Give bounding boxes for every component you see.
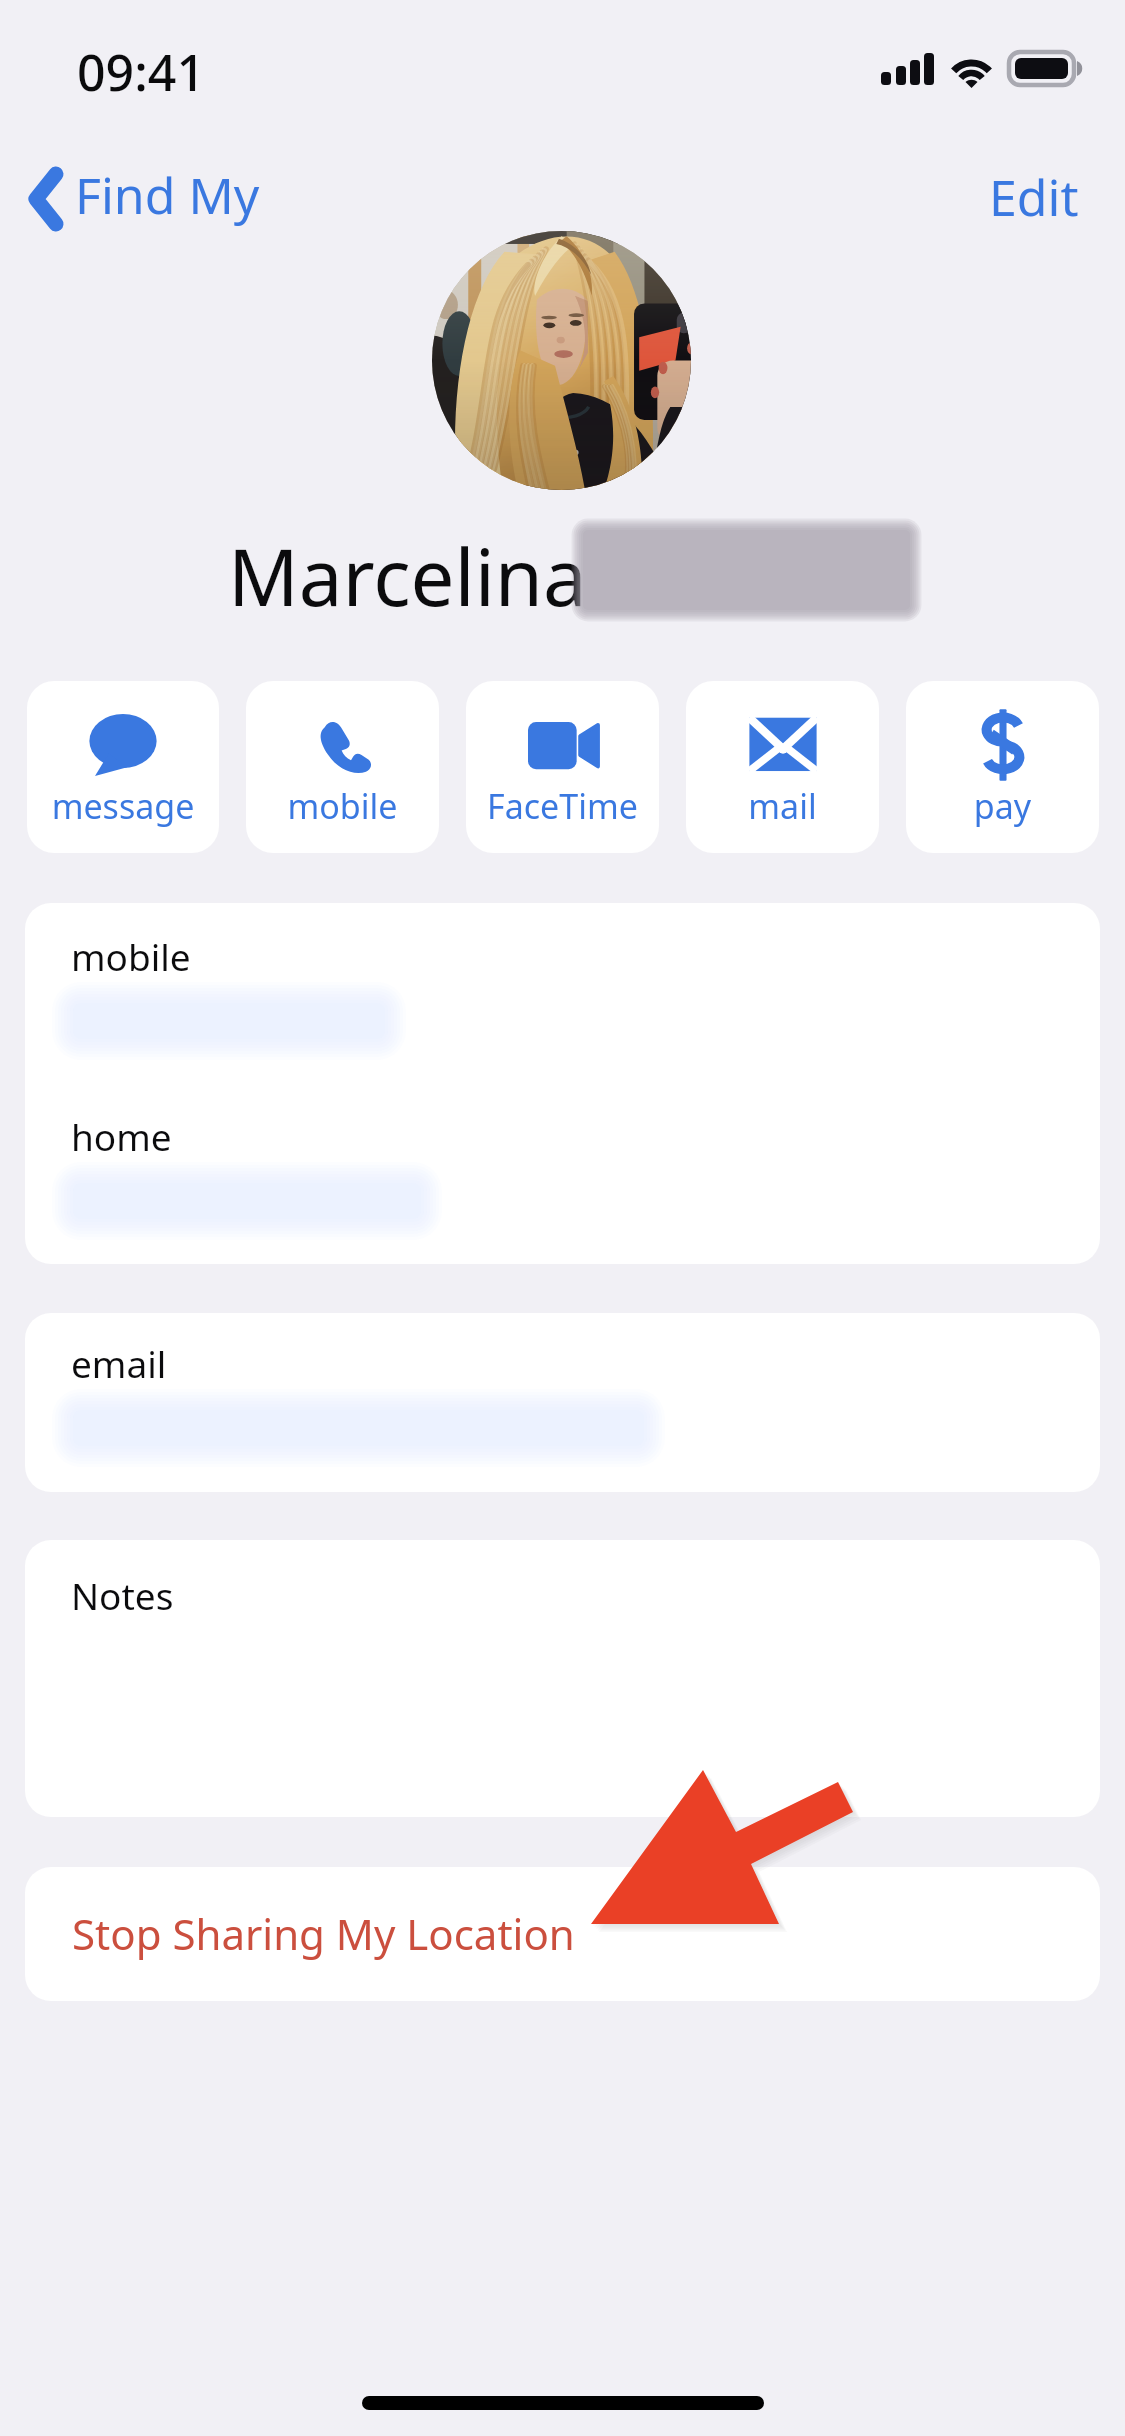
- button[interactable]: Edit: [949, 152, 1125, 238]
- staticText: pay: [906, 783, 1099, 829]
- staticText: home: [71, 1111, 172, 1161]
- button[interactable]: FaceTime: [466, 681, 659, 853]
- button[interactable]: mobile: [25, 903, 1100, 1083]
- button[interactable]: email: [25, 1313, 1100, 1492]
- button[interactable]: home: [25, 1083, 1100, 1264]
- staticText: Marcelina: [228, 523, 587, 629]
- button[interactable]: Contact photo of Marcelina: [432, 231, 691, 490]
- button[interactable]: Back to Find My: [0, 156, 280, 242]
- staticText: FaceTime: [466, 783, 659, 829]
- staticText: mobile: [71, 931, 191, 981]
- button[interactable]: Notes: [25, 1540, 1100, 1817]
- staticText: Find My: [75, 161, 260, 229]
- button[interactable]: mail: [686, 681, 879, 853]
- staticText: message: [27, 783, 219, 829]
- button[interactable]: mobile: [246, 681, 439, 853]
- staticText: mail: [686, 783, 879, 829]
- staticText: Notes: [71, 1570, 174, 1620]
- staticText: email: [71, 1338, 167, 1388]
- staticText: mobile: [246, 783, 439, 829]
- button[interactable]: pay: [906, 681, 1099, 853]
- staticText: 09:41: [77, 38, 205, 106]
- button[interactable]: Stop Sharing My Location: [25, 1867, 1100, 2001]
- staticText: Stop Sharing My Location: [72, 1905, 575, 1962]
- button[interactable]: message: [27, 681, 219, 853]
